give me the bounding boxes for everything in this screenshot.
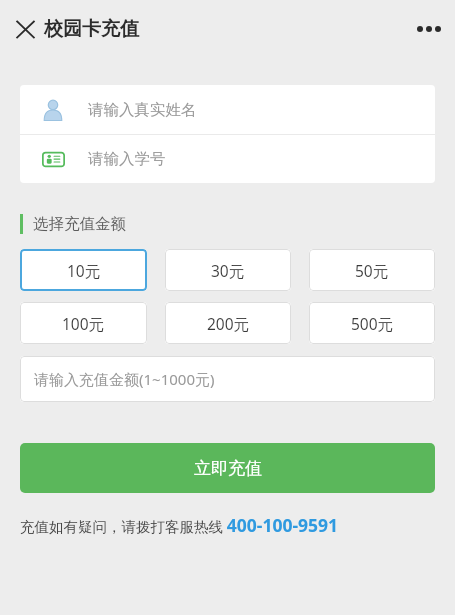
staticText: 请输入学号 <box>88 149 166 169</box>
button[interactable]: More options <box>409 9 449 49</box>
button[interactable]: 200元 <box>165 302 291 344</box>
staticText: 请输入真实姓名 <box>88 100 197 120</box>
staticText: 10元 <box>67 260 101 281</box>
staticText: 立即充值 <box>194 458 262 479</box>
staticText: 50元 <box>355 260 389 281</box>
button[interactable]: 50元 <box>309 249 435 291</box>
button[interactable]: 充值如有疑问，请拨打客服热线 400-100-9591 <box>20 513 435 537</box>
button[interactable]: 请输入学号 <box>20 135 435 183</box>
staticText: 100元 <box>62 313 105 334</box>
button[interactable]: 500元 <box>309 302 435 344</box>
staticText: 30元 <box>211 260 245 281</box>
button[interactable]: 请输入真实姓名 <box>20 85 435 134</box>
staticText: 充值如有疑问，请拨打客服热线 400-100-9591 <box>20 513 339 537</box>
button[interactable]: 30元 <box>165 249 291 291</box>
button[interactable]: 100元 <box>20 302 147 344</box>
staticText: 请输入充值金额(1~1000元) <box>34 369 215 389</box>
button[interactable]: 10元 <box>20 249 147 291</box>
button[interactable]: 立即充值 <box>20 443 435 493</box>
staticText: 500元 <box>351 313 394 334</box>
staticText: 200元 <box>207 313 250 334</box>
staticText: 校园卡充值 <box>44 17 139 41</box>
button[interactable]: 请输入充值金额(1~1000元) <box>20 356 435 402</box>
staticText: 选择充值金额 <box>33 214 126 234</box>
button[interactable]: Close <box>6 10 44 48</box>
